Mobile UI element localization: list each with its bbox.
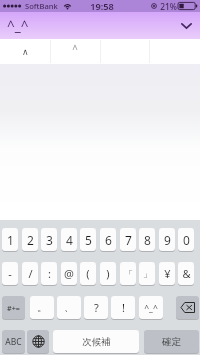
staticText: 5 <box>85 232 92 248</box>
staticText: 2 <box>27 232 34 248</box>
staticText: SoftBank <box>25 1 58 11</box>
staticText: ¥ <box>164 266 171 281</box>
button[interactable]: 8 <box>139 228 155 252</box>
staticText: 確定 <box>162 336 181 348</box>
button[interactable]: Collapse keyboard <box>172 12 200 39</box>
staticText: / <box>28 266 33 281</box>
staticText: 9 <box>164 232 171 248</box>
button[interactable]: 「 <box>120 262 136 286</box>
staticText: 7 <box>125 232 132 248</box>
button[interactable]: ＾ <box>50 39 100 64</box>
staticText: & <box>182 266 191 281</box>
staticText: @ <box>64 266 74 281</box>
staticText: ^_^ <box>7 17 29 35</box>
button[interactable]: 確定 <box>144 330 199 354</box>
button[interactable]: ? <box>84 296 108 320</box>
staticText: ＾ <box>69 41 81 56</box>
button[interactable]: : <box>41 262 57 286</box>
button[interactable]: #+= <box>2 296 25 320</box>
button[interactable]: ∧ <box>0 39 50 64</box>
button[interactable]: ^_^ <box>139 296 163 320</box>
staticText: 19:58 <box>90 0 114 12</box>
button[interactable]: - <box>2 262 18 286</box>
button[interactable]: 6 <box>100 228 116 252</box>
staticText: 4 <box>66 232 73 248</box>
staticText: 「 <box>124 268 133 279</box>
staticText: 1 <box>7 232 14 248</box>
staticText: 次候補 <box>82 336 111 348</box>
button[interactable]: & <box>178 262 194 286</box>
button[interactable]: 5 <box>80 228 96 252</box>
button[interactable]: ! <box>111 296 135 320</box>
staticText: ! <box>122 300 125 315</box>
button[interactable]: / <box>22 262 38 286</box>
button[interactable]: ¥ <box>159 262 175 286</box>
button[interactable]: 、 <box>57 296 81 320</box>
staticText: 6 <box>105 232 112 248</box>
button[interactable]: 1 <box>2 228 18 252</box>
staticText: ( <box>86 266 90 281</box>
button[interactable]: 2 <box>22 228 38 252</box>
staticText: 8 <box>144 232 151 248</box>
button[interactable]: 7 <box>120 228 136 252</box>
staticText: 。 <box>37 301 47 314</box>
staticText: 0 <box>183 232 190 248</box>
staticText: : <box>48 266 51 281</box>
staticText: 21% <box>160 1 177 12</box>
button[interactable]: 3 <box>41 228 57 252</box>
button[interactable]: ) <box>100 262 116 286</box>
staticText: ABC <box>5 336 22 348</box>
button[interactable]: 4 <box>61 228 77 252</box>
staticText: ) <box>106 266 110 281</box>
staticText: ? <box>94 300 99 315</box>
staticText: ^_^ <box>144 302 158 314</box>
button[interactable]: Backspace <box>176 296 199 320</box>
button[interactable]: 」 <box>139 262 155 286</box>
button[interactable]: ( <box>80 262 96 286</box>
button[interactable]: ABC <box>2 330 25 354</box>
button[interactable]: 。 <box>30 296 54 320</box>
button[interactable]: Change keyboard <box>27 330 49 354</box>
button[interactable]: 0 <box>178 228 194 252</box>
button[interactable]: @ <box>61 262 77 286</box>
staticText: 3 <box>46 232 53 248</box>
button[interactable]: 9 <box>159 228 175 252</box>
staticText: 」 <box>143 268 152 279</box>
staticText: - <box>8 266 12 281</box>
staticText: 、 <box>64 301 74 314</box>
button[interactable]: 次候補 <box>53 330 139 354</box>
staticText: ∧ <box>22 47 29 57</box>
staticText: #+= <box>7 303 20 313</box>
